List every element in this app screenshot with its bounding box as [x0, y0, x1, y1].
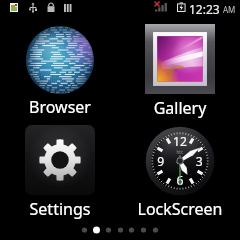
- button[interactable]: Go to home screen 6: [138, 224, 149, 236]
- other: USB connected: [29, 0, 38, 14]
- button[interactable]: Browser: [0, 21, 120, 114]
- staticText: 12:23: [189, 1, 220, 15]
- staticText: Gallery: [120, 97, 240, 119]
- staticText: AM: [223, 4, 236, 15]
- button[interactable]: Home screen 2, current page: [91, 224, 102, 236]
- other: Screen locked: [47, 0, 56, 14]
- other: Storage: [63, 0, 72, 14]
- other: Battery charging: [177, 0, 187, 14]
- other: No signal: [153, 0, 169, 14]
- button[interactable]: Go to home screen 5: [126, 224, 137, 236]
- button[interactable]: Go to home screen 3: [103, 224, 114, 236]
- other: App notification: [10, 0, 19, 14]
- staticText: Browser: [0, 96, 120, 118]
- button[interactable]: Go to home screen 1: [79, 224, 90, 236]
- button[interactable]: LockScreen: [120, 122, 240, 216]
- button[interactable]: Go to home screen 7: [150, 224, 161, 236]
- button[interactable]: Status bar: [0, 0, 240, 14]
- staticText: LockScreen: [120, 198, 240, 220]
- button[interactable]: Settings: [0, 121, 120, 216]
- button[interactable]: Go to home screen 4: [115, 224, 126, 236]
- button[interactable]: Gallery: [120, 20, 240, 115]
- staticText: Settings: [0, 198, 120, 220]
